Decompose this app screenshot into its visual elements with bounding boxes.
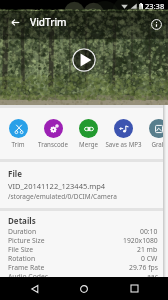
- button[interactable]: [1, 108, 35, 159]
- staticText: Merge: [79, 140, 98, 148]
- staticText: Grab: [151, 140, 163, 148]
- staticText: File Size: [8, 245, 34, 254]
- staticText: 21 mb: [137, 245, 158, 254]
- staticText: aac: [147, 272, 158, 281]
- button[interactable]: Back: [20, 277, 50, 300]
- staticText: 29.76 fps: [129, 263, 158, 272]
- staticText: VID_20141122_123445.mp4: [8, 181, 106, 191]
- staticText: Frame Rate: [8, 263, 45, 272]
- staticText: 0 CW: [141, 254, 158, 263]
- staticText: Duration: [8, 227, 37, 236]
- button[interactable]: [106, 108, 140, 159]
- button[interactable]: [71, 108, 105, 159]
- staticText: Picture Size: [8, 236, 45, 245]
- button[interactable]: Play: [72, 48, 96, 72]
- button[interactable]: [141, 108, 163, 159]
- staticText: VidTrim: [30, 15, 67, 29]
- staticText: 1920x1080: [123, 236, 158, 245]
- button[interactable]: Home: [69, 277, 99, 300]
- button[interactable]: Recent apps: [119, 277, 149, 300]
- staticText: Details: [8, 215, 36, 226]
- staticText: /storage/emulated/0/DCIM/Camera: [8, 192, 117, 201]
- staticText: File: [8, 168, 22, 179]
- button[interactable]: [36, 108, 70, 159]
- staticText: Rotation: [8, 254, 36, 263]
- staticText: Transcode: [38, 140, 68, 148]
- staticText: Trim: [11, 140, 25, 148]
- staticText: 23:38: [145, 1, 165, 11]
- button[interactable]: Back: [4, 11, 26, 33]
- button[interactable]: Info: [145, 13, 167, 35]
- staticText: Audio Codec: [8, 272, 49, 281]
- staticText: Save as MP3: [105, 140, 142, 148]
- staticText: 00:10: [140, 227, 158, 236]
